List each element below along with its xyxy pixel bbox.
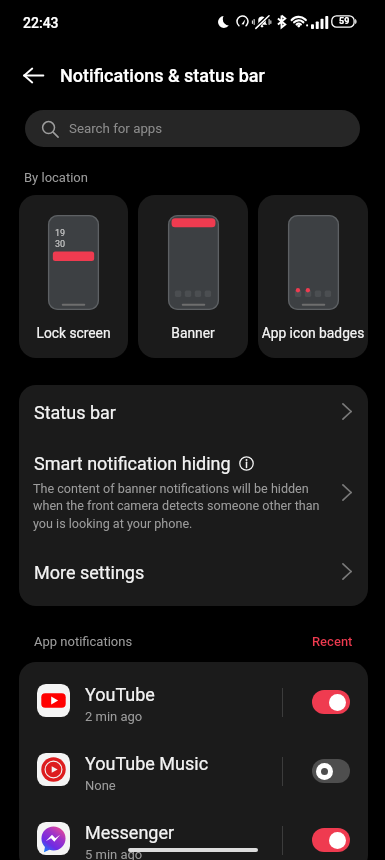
button[interactable]: Smart notification hiding xyxy=(19,440,368,550)
button[interactable]: Recent xyxy=(312,634,353,649)
staticText: More settings xyxy=(34,562,145,583)
staticText: Lock screen xyxy=(19,325,128,341)
staticText: Smart notification hiding xyxy=(34,453,231,474)
staticText: Status bar xyxy=(34,402,116,423)
staticText: App notifications xyxy=(34,634,133,649)
staticText: Banner xyxy=(138,325,248,341)
staticText: 59 xyxy=(339,16,350,27)
button[interactable]: Toggle off xyxy=(312,759,350,783)
button[interactable]: Toggle on xyxy=(312,690,350,714)
staticText: Recent xyxy=(312,634,353,649)
button[interactable]: Search for apps xyxy=(25,110,360,147)
staticText: 22:43 xyxy=(23,15,59,31)
staticText: By location xyxy=(24,170,88,185)
staticText: YouTube Music xyxy=(85,753,209,774)
button[interactable]: Status bar xyxy=(19,385,368,440)
button[interactable]: Toggle on xyxy=(312,828,350,852)
button[interactable]: Back xyxy=(14,56,52,94)
button[interactable]: 19 xyxy=(19,195,128,358)
staticText: App icon badges xyxy=(258,325,368,341)
staticText: Search for apps xyxy=(69,121,163,137)
staticText: The content of banner notifications will… xyxy=(33,481,323,531)
staticText: Notifications & status bar xyxy=(60,65,265,86)
button[interactable]: Messenger xyxy=(19,800,368,860)
staticText: 30 xyxy=(55,239,66,250)
staticText: None xyxy=(85,778,116,793)
button[interactable]: YouTube Music xyxy=(19,731,368,800)
staticText: 19 xyxy=(55,228,66,239)
button[interactable]: App icon badges xyxy=(258,195,368,358)
staticText: 5 min ago xyxy=(85,847,143,860)
staticText: 2 min ago xyxy=(85,709,143,724)
button[interactable]: YouTube xyxy=(19,662,368,731)
button[interactable]: Banner xyxy=(138,195,248,358)
button[interactable]: More settings xyxy=(19,550,368,606)
staticText: Messenger xyxy=(85,822,175,843)
staticText: YouTube xyxy=(85,684,155,705)
